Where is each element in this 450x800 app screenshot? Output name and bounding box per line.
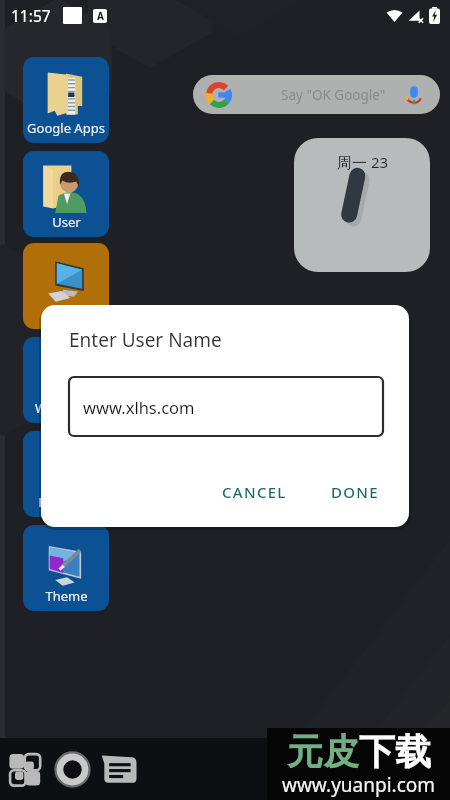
- button[interactable]: Google search: [193, 75, 440, 114]
- button[interactable]: DONE: [322, 475, 388, 509]
- staticText: User: [52, 213, 81, 231]
- staticText: Google Apps: [27, 119, 105, 137]
- button[interactable]: Wallpaper: [23, 337, 109, 423]
- button[interactable]: Ringtone: [23, 431, 109, 517]
- button[interactable]: Clock widget: [294, 138, 430, 272]
- button[interactable]: Recents: [3, 747, 48, 792]
- button[interactable]: Home: [50, 747, 95, 792]
- button[interactable]: [23, 243, 109, 329]
- button[interactable]: Menu: [97, 747, 142, 792]
- staticText: www.yuanpi.com: [282, 772, 436, 798]
- button[interactable]: User: [23, 151, 109, 237]
- staticText: A: [97, 9, 104, 23]
- button[interactable]: CANCEL: [213, 475, 296, 509]
- staticText: Say "OK Google": [281, 86, 386, 104]
- button[interactable]: Theme: [23, 525, 109, 611]
- button[interactable]: Google Apps: [23, 57, 109, 143]
- staticText: 元皮: [287, 729, 359, 774]
- staticText: 11:57: [11, 5, 51, 26]
- staticText: CANCEL: [222, 482, 287, 502]
- button[interactable]: www.xlhs.com: [69, 377, 383, 436]
- staticText: Ringtone: [38, 493, 94, 511]
- staticText: Wallpaper: [35, 399, 97, 417]
- staticText: Theme: [45, 587, 88, 605]
- staticText: Enter User Name: [69, 327, 222, 353]
- staticText: www.xlhs.com: [83, 396, 195, 418]
- staticText: 周一 23: [337, 152, 389, 172]
- staticText: DONE: [331, 482, 379, 502]
- staticText: 下载: [359, 729, 431, 774]
